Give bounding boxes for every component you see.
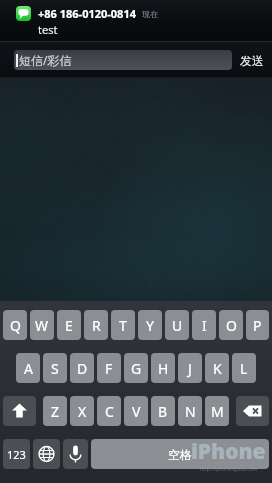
staticText: F [105,359,113,378]
button[interactable]: B [151,396,175,426]
button[interactable]: H [151,353,175,383]
staticText: R [92,316,101,335]
button[interactable]: C [97,396,121,426]
button[interactable]: A [16,353,40,383]
staticText: V [132,402,141,421]
button[interactable]: E [57,310,81,340]
button[interactable]: V [124,396,148,426]
button[interactable]: N [178,396,202,426]
staticText: A [24,359,33,378]
staticText: test [38,22,58,37]
staticText: X [78,402,87,421]
button[interactable]: Z [43,396,67,426]
button[interactable]: P [246,310,269,340]
button[interactable]: Y [138,310,162,340]
button[interactable]: Q [3,310,27,340]
button[interactable]: G [124,353,148,383]
button[interactable]: O [219,310,243,340]
button[interactable]: I [192,310,216,340]
staticText: B [158,402,168,421]
staticText: O [226,316,237,335]
button[interactable]: F [97,353,121,383]
staticText: +86 186-0120-0814 [38,6,136,21]
staticText: J [188,359,192,378]
button[interactable]: Delete [236,396,269,426]
staticText: 现在 [142,9,158,19]
staticText: M [211,402,224,421]
staticText: 短信/彩信 [19,52,72,68]
staticText: N [185,402,196,421]
staticText: 发送 [240,53,264,68]
staticText: 空格 [168,447,192,462]
staticText: H [158,359,169,378]
staticText: T [119,316,127,335]
button[interactable]: Shift [3,396,36,426]
button[interactable]: U [165,310,189,340]
button[interactable]: Change keyboard [33,439,60,469]
staticText: Z [51,402,60,421]
button[interactable]: D [70,353,94,383]
staticText: G [131,359,142,378]
staticText: K [213,359,222,378]
staticText: W [35,316,49,335]
staticText: iPhone [191,437,266,466]
button[interactable]: 空格 [91,439,269,469]
button[interactable]: 123 [3,439,30,469]
staticText: E [65,316,73,335]
staticText: http://iphone.tgbus.com [200,466,258,473]
staticText: U [172,316,183,335]
staticText: C [105,402,114,421]
staticText: Y [146,316,154,335]
staticText: I [202,316,207,335]
button[interactable]: 短信/彩信 [14,50,232,70]
button[interactable]: T [111,310,135,340]
staticText: S [51,359,59,378]
button[interactable]: K [205,353,229,383]
button[interactable]: M [205,396,229,426]
staticText: D [77,359,88,378]
staticText: P [253,316,262,335]
button[interactable]: S [43,353,67,383]
button[interactable]: +86 186-0120-0814 [0,0,272,42]
button[interactable]: 发送 [238,51,266,70]
staticText: L [240,359,248,378]
button[interactable]: J [178,353,202,383]
button[interactable]: X [70,396,94,426]
button[interactable]: Dictate [63,439,88,469]
button[interactable]: W [30,310,54,340]
button[interactable]: L [232,353,256,383]
staticText: Q [10,316,21,335]
staticText: 123 [7,447,26,462]
button[interactable]: R [84,310,108,340]
